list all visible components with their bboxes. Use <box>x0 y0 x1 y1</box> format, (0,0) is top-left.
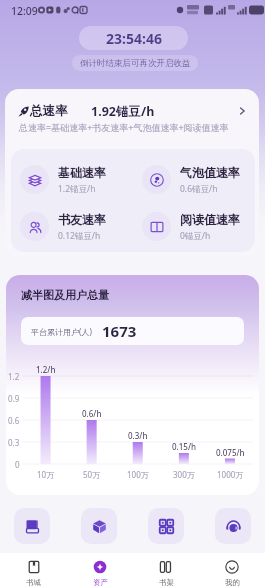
button[interactable]: 书友速率 <box>20 203 133 250</box>
staticText: 50万 <box>83 469 101 480</box>
staticText: 0.6锚豆/h <box>180 183 218 195</box>
button[interactable]: Assets <box>81 508 117 544</box>
staticText: 1.2 <box>8 371 20 382</box>
staticText: 书城 <box>26 578 41 587</box>
staticText: 0.6/h <box>82 408 102 419</box>
staticText: 1.92锚豆/h <box>91 103 155 119</box>
staticText: 倒计时结束后可再次开启收益 <box>80 58 191 69</box>
button[interactable]: 基础速率 <box>20 156 133 203</box>
button[interactable]: 我的 <box>199 553 265 587</box>
button[interactable]: 气泡值速率 <box>142 156 255 203</box>
staticText: 23:54:46 <box>106 29 162 48</box>
staticText: 书架 <box>159 578 174 587</box>
staticText: 气泡值速率 <box>180 165 240 180</box>
staticText: 1.2/h <box>36 364 56 375</box>
staticText: 0锚豆/h <box>180 230 211 242</box>
button[interactable]: 阅读值速率 <box>142 203 255 250</box>
staticText: 0.9 <box>8 393 20 404</box>
staticText: 我的 <box>225 578 240 587</box>
staticText: 0.15/h <box>172 441 196 452</box>
staticText: 10万 <box>37 469 55 480</box>
button[interactable]: 书城 <box>0 553 67 587</box>
button[interactable]: Support <box>215 508 251 544</box>
staticText: 12:09 <box>11 4 38 18</box>
button[interactable]: 总速率 <box>5 103 259 119</box>
staticText: 总速率 <box>30 103 68 119</box>
staticText: 1000万 <box>217 469 244 480</box>
staticText: 100万 <box>127 469 149 480</box>
staticText: 300万 <box>173 469 195 480</box>
staticText: 0.12锚豆/h <box>58 230 101 242</box>
staticText: 总速率=基础速率+书友速率+气泡值速率+阅读值速率 <box>19 121 229 133</box>
staticText: 资产 <box>93 578 108 587</box>
button[interactable]: 书架 <box>133 553 199 587</box>
staticText: 0.075/h <box>216 447 245 458</box>
button[interactable]: Bookstore <box>14 508 50 544</box>
staticText: 基础速率 <box>58 165 106 180</box>
staticText: 0.6 <box>8 415 20 426</box>
staticText: 阅读值速率 <box>180 212 240 227</box>
staticText: 减半图及用户总量 <box>21 288 109 302</box>
button[interactable]: 资产 <box>67 553 133 587</box>
button[interactable]: Scan <box>148 508 184 544</box>
staticText: 书友速率 <box>58 212 106 227</box>
staticText: 0.3 <box>8 437 20 448</box>
staticText: 0.3/h <box>128 430 148 441</box>
staticText: 1.2锚豆/h <box>58 183 96 195</box>
staticText: 0 <box>15 459 20 470</box>
staticText: 1673 <box>102 321 137 341</box>
staticText: 平台累计用户(人) <box>31 326 92 337</box>
